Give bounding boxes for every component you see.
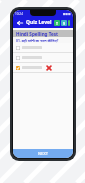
staticText: T: [56, 21, 58, 26]
button[interactable]: Back: [16, 19, 24, 27]
staticText: 10:24: [15, 12, 23, 16]
staticText: Hindi Spelling Test: [16, 31, 59, 37]
staticText: 01. सही वर्तनी का चयन कीजिए?: [16, 38, 59, 42]
button[interactable]: Lives: [68, 20, 70, 26]
staticText: NEXT: [38, 151, 48, 156]
button[interactable]: [13, 63, 73, 72]
button[interactable]: [13, 53, 73, 62]
button[interactable]: [13, 43, 73, 52]
button[interactable]: NEXT: [13, 149, 73, 158]
staticText: 9: [63, 21, 65, 26]
staticText: ◼◼◼: [63, 12, 71, 16]
button[interactable]: Timer: [61, 20, 67, 26]
button[interactable]: Score: [54, 20, 60, 26]
staticText: Quiz Level: [26, 19, 52, 26]
